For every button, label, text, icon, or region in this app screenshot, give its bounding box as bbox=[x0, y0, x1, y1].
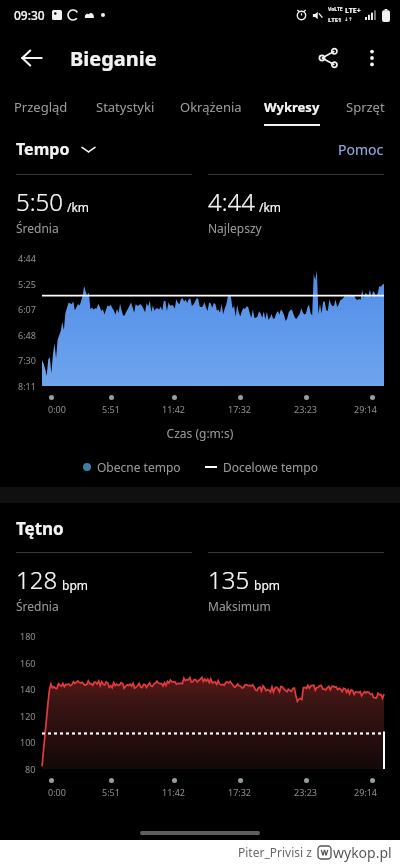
staticText: 5:51 bbox=[102, 786, 120, 798]
staticText: 5:25 bbox=[18, 278, 36, 290]
staticText: 5:50 bbox=[16, 185, 63, 218]
staticText: Średnia bbox=[16, 598, 59, 614]
staticText: Obecne tempo bbox=[97, 459, 181, 475]
button[interactable]: Sprzęt bbox=[330, 86, 400, 128]
staticText: 4:44 bbox=[18, 252, 36, 264]
staticText: Pomoc bbox=[338, 140, 384, 159]
staticText: Okrążenia bbox=[180, 98, 242, 116]
staticText: 11:42 bbox=[162, 403, 186, 415]
staticText: 17:32 bbox=[228, 786, 252, 798]
staticText: Maksimum bbox=[208, 598, 271, 614]
staticText: Bieganie bbox=[70, 45, 157, 72]
staticText: 140 bbox=[20, 683, 36, 695]
staticText: VoLTE bbox=[328, 6, 343, 13]
button[interactable]: Wykresy bbox=[254, 86, 330, 128]
staticText: 8:11 bbox=[18, 380, 36, 392]
button[interactable]: Tempo bbox=[16, 138, 95, 160]
button[interactable]: Pomoc bbox=[338, 140, 384, 159]
staticText: Najlepszy bbox=[208, 220, 262, 236]
staticText: /km bbox=[67, 199, 90, 215]
staticText: Tętno bbox=[16, 517, 64, 540]
staticText: 11:42 bbox=[162, 786, 186, 798]
staticText: 0:00 bbox=[48, 786, 66, 798]
button[interactable]: Back bbox=[8, 34, 56, 82]
staticText: Tempo bbox=[16, 138, 70, 160]
staticText: Docelowe tempo bbox=[223, 459, 318, 475]
staticText: 23:23 bbox=[294, 786, 318, 798]
staticText: 29:14 bbox=[354, 403, 378, 415]
staticText: Przegląd bbox=[14, 98, 68, 116]
staticText: 80 bbox=[25, 763, 36, 775]
staticText: /km bbox=[259, 199, 282, 215]
staticText: LTE+ bbox=[345, 6, 361, 16]
button[interactable]: More options bbox=[350, 36, 394, 80]
staticText: 7:30 bbox=[18, 354, 36, 366]
staticText: 6:48 bbox=[18, 329, 36, 341]
staticText: Statystyki bbox=[96, 98, 155, 116]
staticText: wykop.pl bbox=[333, 843, 392, 862]
staticText: Wykresy bbox=[264, 98, 320, 116]
staticText: 5:51 bbox=[102, 403, 120, 415]
button[interactable]: Statystyki bbox=[82, 86, 168, 128]
staticText: 135 bbox=[208, 563, 250, 596]
staticText: 17:32 bbox=[228, 403, 252, 415]
staticText: 09:30 bbox=[14, 7, 45, 23]
staticText: 0:00 bbox=[48, 403, 66, 415]
staticText: Czas (g:m:s) bbox=[0, 425, 400, 441]
staticText: 120 bbox=[20, 710, 36, 722]
staticText: 23:23 bbox=[294, 403, 318, 415]
staticText: 180 bbox=[20, 630, 36, 642]
staticText: 29:14 bbox=[354, 786, 378, 798]
button[interactable]: Okrążenia bbox=[168, 86, 254, 128]
staticText: 4:44 bbox=[208, 185, 255, 218]
staticText: 128 bbox=[16, 563, 58, 596]
staticText: Piter_Privisi z bbox=[238, 844, 312, 860]
staticText: 6:07 bbox=[18, 303, 36, 315]
staticText: bpm bbox=[62, 577, 88, 593]
button[interactable]: Przegląd bbox=[0, 86, 82, 128]
staticText: LTE1 bbox=[328, 16, 342, 24]
staticText: bpm bbox=[254, 577, 280, 593]
staticText: ↓↑ bbox=[344, 16, 353, 22]
button[interactable]: Share bbox=[306, 36, 350, 80]
staticText: 160 bbox=[20, 657, 36, 669]
staticText: Średnia bbox=[16, 220, 59, 236]
staticText: Sprzęt bbox=[346, 98, 385, 116]
staticText: 100 bbox=[20, 736, 36, 748]
